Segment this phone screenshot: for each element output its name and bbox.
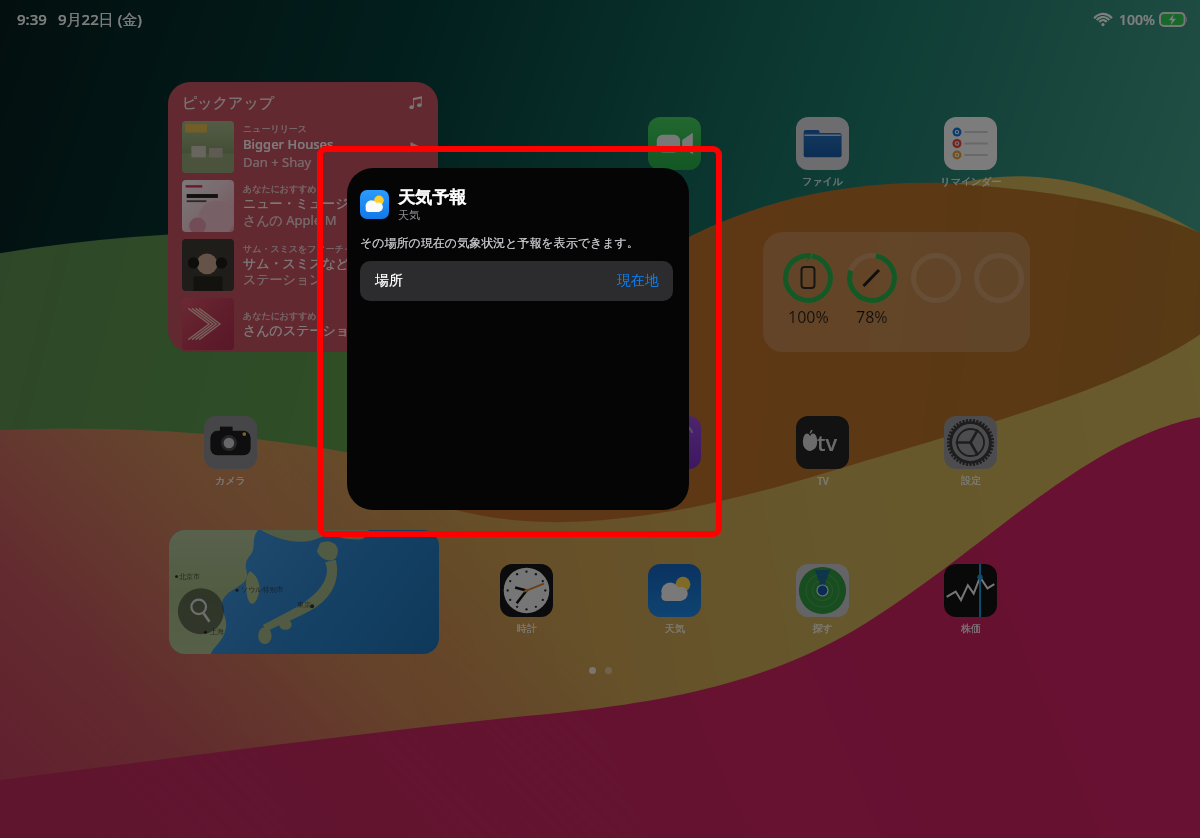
staticText: 設定 bbox=[961, 474, 981, 487]
button[interactable]: ne bbox=[634, 117, 715, 189]
button[interactable]: カメラ bbox=[190, 416, 271, 487]
button[interactable]: 場所 bbox=[360, 261, 673, 301]
staticText: 100% bbox=[1119, 10, 1155, 29]
staticText: TV bbox=[817, 474, 829, 488]
staticText: 天気予報 bbox=[398, 187, 466, 208]
staticText: ステーション bbox=[243, 271, 323, 287]
button[interactable]: 時計 bbox=[486, 564, 567, 635]
staticText: tv bbox=[817, 427, 838, 457]
staticText: 現在地 bbox=[617, 272, 659, 290]
staticText: ファイル bbox=[802, 175, 843, 188]
staticText: 78% bbox=[856, 306, 888, 328]
button[interactable]: ピックアップ bbox=[168, 82, 438, 352]
staticText: ピックアップ bbox=[182, 94, 275, 113]
staticText: カメラ bbox=[215, 474, 246, 487]
staticText: ニューリリース bbox=[243, 123, 308, 134]
staticText: Bigger Houses bbox=[243, 135, 334, 153]
staticText: 東京 bbox=[297, 600, 311, 609]
staticText: あなたにおすすめ bbox=[243, 183, 317, 194]
staticText: 探す bbox=[812, 622, 833, 635]
staticText: 上海 bbox=[210, 627, 224, 636]
button[interactable]: 北京市 bbox=[169, 530, 439, 654]
button[interactable]: tv bbox=[782, 416, 863, 488]
staticText: その場所の現在の気象状況と予報を表示できます。 bbox=[360, 235, 639, 250]
button[interactable]: 設定 bbox=[930, 416, 1011, 487]
button[interactable]: リマインダー bbox=[930, 117, 1011, 188]
button[interactable]: 探す bbox=[782, 564, 863, 635]
staticText: 天気 bbox=[398, 208, 420, 222]
staticText: 北京市 bbox=[179, 572, 200, 581]
staticText: リマインダー bbox=[940, 175, 1002, 188]
staticText: サム・スミスをフィーチャー bbox=[243, 243, 363, 254]
staticText: さんのステーショ bbox=[243, 322, 350, 338]
button[interactable]: ファイル bbox=[782, 117, 863, 188]
button[interactable]: 天気 bbox=[634, 564, 715, 635]
staticText: ソウル特別市 bbox=[241, 585, 284, 594]
staticText: 天気 bbox=[665, 622, 685, 635]
staticText: Dan + Shay bbox=[243, 153, 312, 171]
button[interactable]: 100% bbox=[763, 232, 1030, 352]
button[interactable]: 株価 bbox=[930, 564, 1011, 635]
staticText: あなたにおすすめ bbox=[243, 310, 317, 321]
staticText: ニュー・ミュージック bbox=[243, 195, 376, 211]
staticText: 時計 bbox=[517, 622, 537, 635]
staticText: 9:39 bbox=[17, 9, 47, 29]
staticText: 9月22日 (金) bbox=[58, 9, 143, 29]
staticText: 株価 bbox=[961, 622, 981, 635]
button[interactable]: スト bbox=[634, 416, 715, 487]
staticText: さんの Apple M bbox=[243, 211, 337, 229]
staticText: 場所 bbox=[375, 272, 403, 290]
staticText: 100% bbox=[788, 306, 829, 328]
staticText: サム・スミスなどの bbox=[243, 255, 363, 271]
